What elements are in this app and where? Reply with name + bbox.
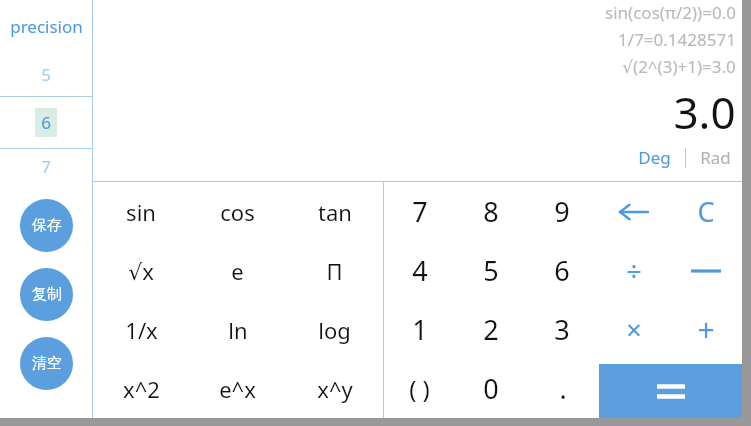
staticText: 4 (412, 252, 428, 289)
button[interactable]: . (527, 359, 599, 418)
staticText: 1/x (125, 315, 158, 345)
button[interactable]: Π (286, 241, 383, 300)
button[interactable]: x^y (286, 359, 383, 418)
staticText: Rad (700, 146, 731, 169)
staticText: 6 (554, 252, 570, 289)
button[interactable]: 7 (384, 182, 455, 241)
staticText: 5 (483, 252, 499, 289)
staticText: 3.0 (673, 82, 736, 142)
button[interactable]: tan (286, 182, 383, 241)
staticText: 保存 (32, 216, 62, 235)
button[interactable]: √x (93, 241, 189, 300)
button[interactable]: 保存 (20, 199, 73, 252)
button[interactable]: ln (189, 300, 286, 359)
staticText: √x (128, 256, 154, 286)
staticText: sin(cos(π/2))=0.0 (605, 1, 736, 24)
button[interactable]: ÷ (598, 241, 670, 300)
staticText: Deg (638, 146, 671, 169)
button[interactable]: 9 (526, 182, 598, 241)
staticText: 3 (554, 311, 570, 348)
staticText: 清空 (32, 354, 62, 373)
staticText: 8 (483, 193, 499, 230)
button[interactable]: 4 (384, 241, 455, 300)
button[interactable]: precision (0, 0, 92, 52)
staticText: x^2 (123, 374, 160, 404)
staticText: Π (326, 256, 343, 286)
staticText: 5 (41, 63, 51, 86)
button[interactable]: Backspace (598, 182, 670, 241)
button[interactable]: x^2 (93, 359, 189, 418)
staticText: 复制 (32, 285, 62, 304)
staticText: x^y (317, 374, 353, 404)
staticText: √(2^(3)+1)=3.0 (622, 55, 736, 78)
staticText: + (697, 309, 715, 350)
staticText: C (697, 193, 715, 230)
staticText: ln (228, 315, 248, 345)
button[interactable]: 5 (455, 241, 526, 300)
staticText: 9 (554, 193, 570, 230)
staticText: × (626, 311, 642, 348)
button[interactable]: log (286, 300, 383, 359)
staticText: e (231, 256, 244, 286)
button[interactable]: C (670, 182, 742, 241)
button[interactable]: 1/x (93, 300, 189, 359)
staticText: 1 (412, 311, 428, 348)
staticText: 0 (483, 370, 499, 407)
staticText: 7 (41, 155, 51, 178)
button[interactable]: Deg (633, 146, 676, 169)
button[interactable]: 复制 (20, 268, 73, 321)
button[interactable]: 6 (0, 97, 92, 148)
button[interactable]: 2 (455, 300, 526, 359)
button[interactable]: 0 (455, 359, 527, 418)
staticText: 2 (483, 311, 499, 348)
button[interactable]: e^x (189, 359, 286, 418)
staticText: . (559, 370, 567, 407)
button[interactable]: 3 (526, 300, 598, 359)
staticText: ÷ (626, 252, 642, 289)
button[interactable]: × (598, 300, 670, 359)
staticText: tan (318, 197, 352, 227)
button[interactable]: 5 (0, 52, 92, 96)
staticText: 6 (41, 111, 51, 134)
staticText: sin (126, 197, 156, 227)
staticText: cos (220, 197, 255, 227)
button[interactable]: cos (189, 182, 286, 241)
button[interactable]: 6 (526, 241, 598, 300)
staticText: precision (10, 15, 83, 38)
staticText: 7 (412, 193, 428, 230)
staticText: ( ) (409, 372, 430, 405)
staticText: 1/7=0.1428571 (618, 28, 736, 51)
button[interactable]: Equals (599, 364, 742, 418)
button[interactable]: ( ) (384, 359, 455, 418)
button[interactable]: e (189, 241, 286, 300)
button[interactable]: 1 (384, 300, 455, 359)
staticText: log (318, 315, 351, 345)
button[interactable]: 7 (0, 149, 92, 183)
staticText: e^x (219, 374, 256, 404)
button[interactable]: 8 (455, 182, 526, 241)
button[interactable]: + (670, 300, 742, 359)
button[interactable]: Rad (695, 146, 736, 169)
button[interactable]: 清空 (20, 337, 73, 390)
button[interactable]: Minus (670, 241, 742, 300)
button[interactable]: sin (93, 182, 189, 241)
